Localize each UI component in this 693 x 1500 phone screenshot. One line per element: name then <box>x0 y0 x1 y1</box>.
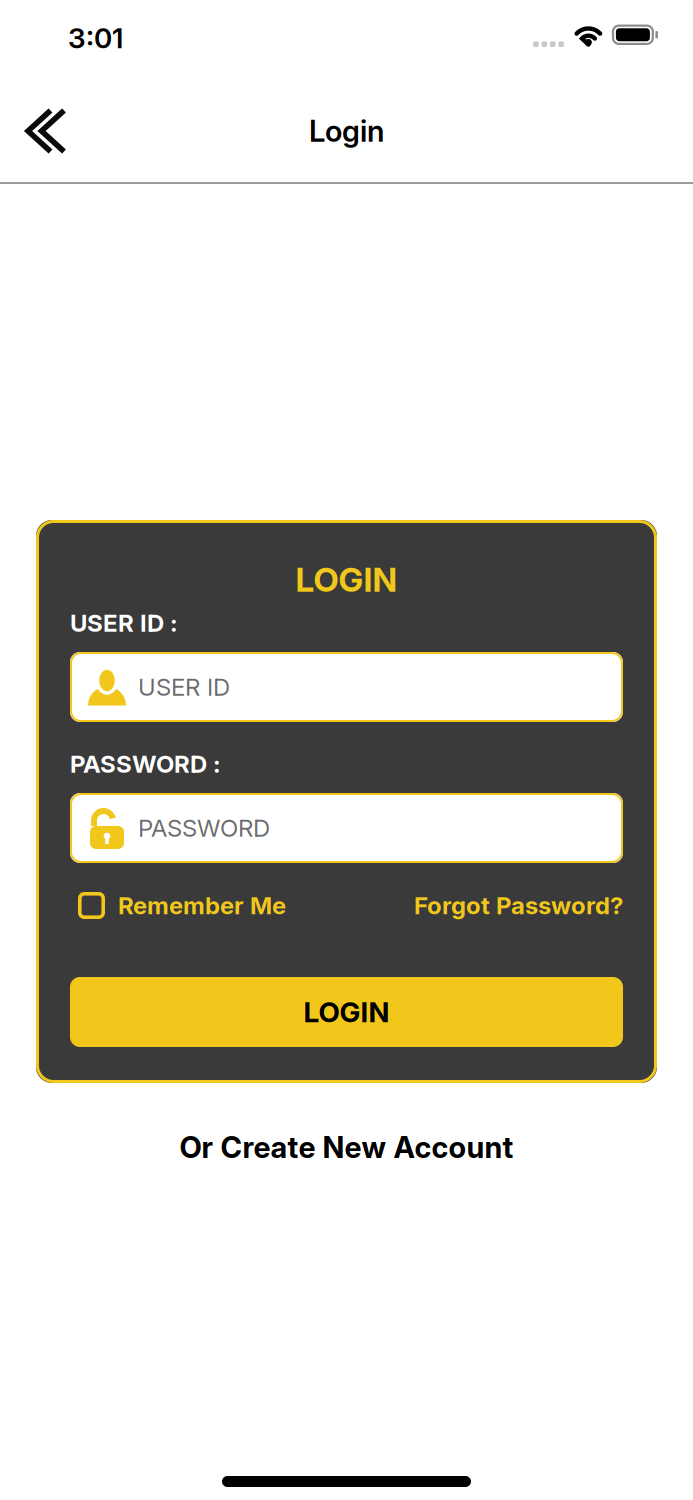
staticText: LOGIN <box>295 560 397 599</box>
staticText: Remember Me <box>118 891 286 920</box>
button[interactable]: LOGIN <box>70 977 623 1047</box>
button[interactable]: Back <box>0 107 67 154</box>
staticText: USER ID <box>138 673 230 701</box>
staticText: PASSWORD : <box>70 750 221 778</box>
staticText: PASSWORD <box>138 814 270 842</box>
staticText: 3:01 <box>68 21 123 54</box>
staticText: LOGIN <box>303 995 389 1028</box>
staticText: Or Create New Account <box>179 1130 513 1165</box>
staticText: USER ID : <box>70 609 178 637</box>
button[interactable]: Forgot Password? <box>414 891 623 920</box>
button[interactable]: User ID <box>70 652 623 722</box>
button[interactable]: Password <box>70 793 623 863</box>
staticText: Login <box>309 114 384 148</box>
button[interactable]: Or Create New Account <box>179 1130 513 1165</box>
staticText: Forgot Password? <box>414 891 623 920</box>
button[interactable]: Remember Me <box>78 891 286 920</box>
